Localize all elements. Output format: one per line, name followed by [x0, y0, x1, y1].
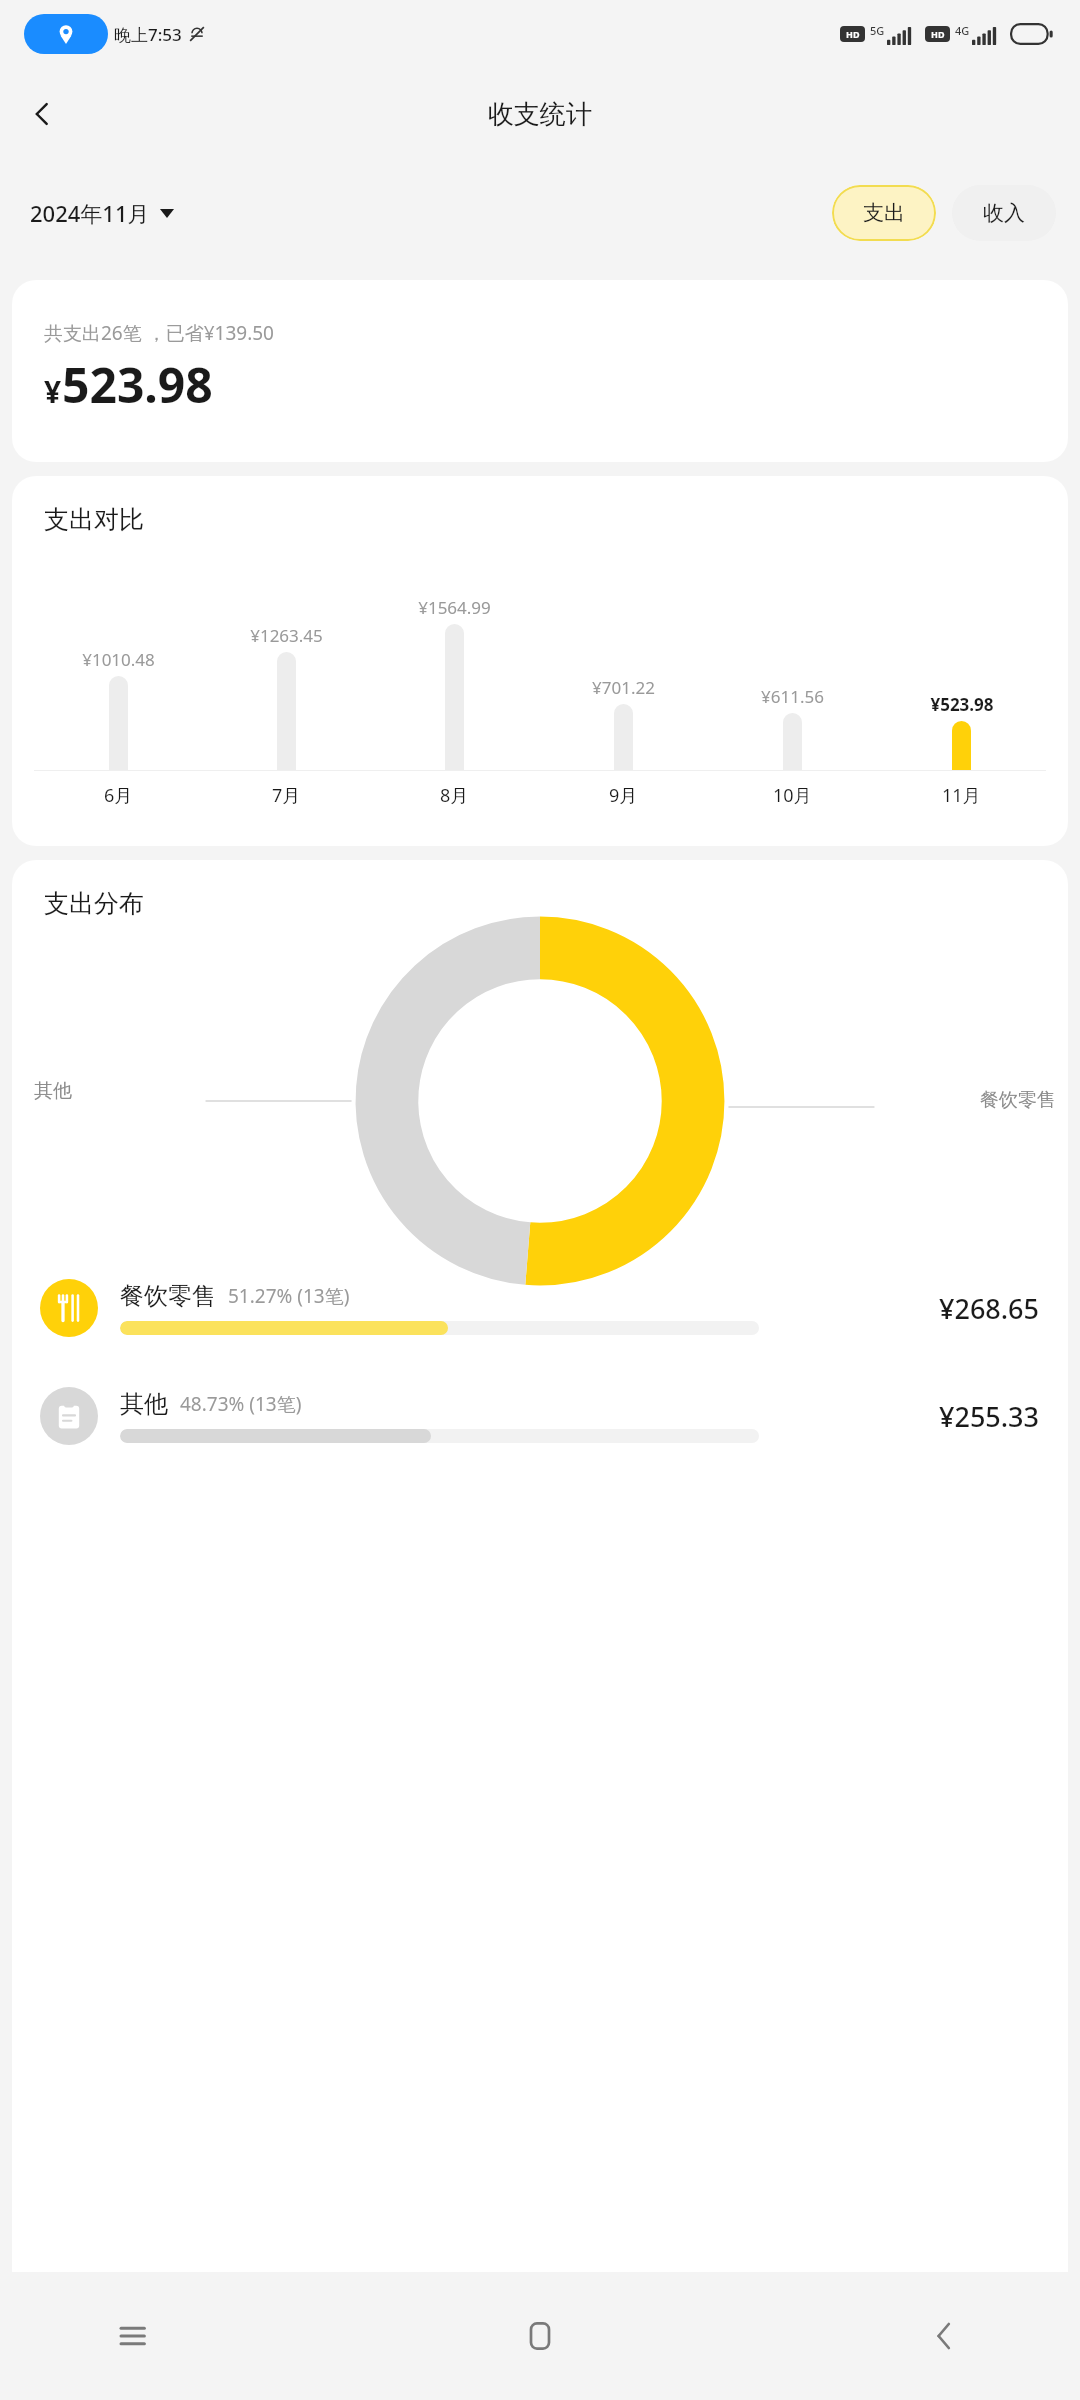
staticText: ¥1263.45	[250, 624, 323, 647]
staticText: 支出对比	[44, 504, 144, 535]
staticText: 支出	[863, 200, 905, 226]
staticText: 7月	[272, 783, 301, 808]
staticText: ¥1564.99	[418, 596, 491, 619]
button[interactable]: Back	[908, 2300, 980, 2372]
staticText: 5G	[870, 23, 885, 38]
button[interactable]: 其他	[40, 1387, 1040, 1445]
staticText: HD	[846, 28, 860, 40]
staticText: 8月	[440, 783, 469, 808]
staticText: 餐饮零售	[980, 1088, 1056, 1112]
staticText: 共支出26笔 ，已省¥139.50	[44, 320, 274, 346]
staticText: 6月	[104, 783, 133, 808]
staticText: 2024年11月	[30, 198, 150, 228]
staticText: 其他	[34, 1079, 72, 1103]
staticText: ¥701.22	[592, 676, 655, 699]
staticText: 晚上7:53	[114, 23, 182, 46]
button[interactable]: Back	[14, 86, 70, 142]
staticText: 9月	[609, 783, 638, 808]
staticText: 10月	[773, 783, 812, 808]
staticText: ¥268.65	[939, 1290, 1040, 1327]
staticText: 餐饮零售	[120, 1281, 216, 1311]
staticText: ¥523.98	[930, 693, 994, 716]
staticText: 51.27% (13笔)	[228, 1283, 350, 1309]
staticText: 523.98	[62, 352, 213, 417]
button[interactable]: 餐饮零售	[40, 1279, 1040, 1337]
staticText: ¥611.56	[761, 685, 824, 708]
staticText: 收入	[983, 200, 1025, 226]
staticText: 其他	[120, 1389, 168, 1419]
staticText: HD	[931, 28, 945, 40]
staticText: 48.73% (13笔)	[180, 1391, 302, 1417]
button[interactable]: 支出	[832, 185, 936, 241]
staticText: ¥255.33	[939, 1398, 1040, 1435]
staticText: ¥1010.48	[82, 648, 155, 671]
button[interactable]: 共支出26笔 ，已省¥139.50	[12, 280, 1068, 462]
staticText: 收支统计	[488, 98, 592, 131]
staticText: 11月	[942, 783, 981, 808]
staticText: 4G	[955, 23, 970, 38]
button[interactable]: 2024年11月	[30, 198, 174, 228]
button[interactable]: 收入	[952, 185, 1056, 241]
button[interactable]: Home	[504, 2300, 576, 2372]
staticText: ¥	[44, 371, 62, 412]
staticText: 支出分布	[44, 888, 144, 919]
button[interactable]: Recent apps	[100, 2300, 172, 2372]
